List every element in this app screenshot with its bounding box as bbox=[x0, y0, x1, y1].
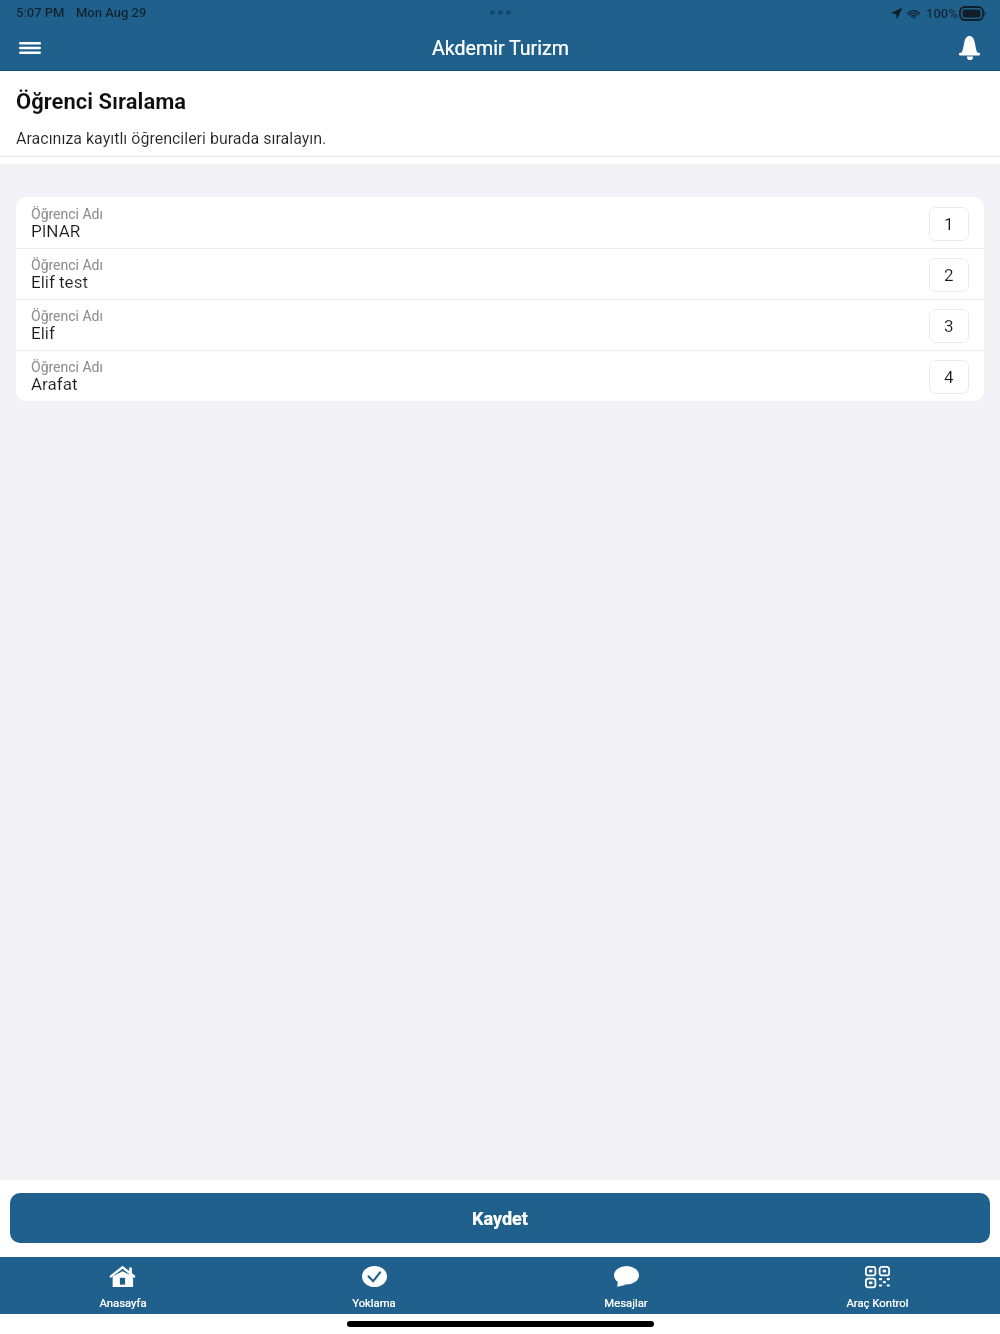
staticText: Öğrenci Adı bbox=[31, 206, 103, 222]
staticText: Elif bbox=[31, 323, 55, 343]
button[interactable]: Mesajlar bbox=[503, 1257, 749, 1314]
staticText: Öğrenci Adı bbox=[31, 308, 103, 324]
staticText: Mon Aug 29 bbox=[76, 5, 147, 20]
button[interactable]: Anasayfa bbox=[0, 1257, 245, 1314]
staticText: 1 bbox=[944, 214, 954, 234]
staticText: Kaydet bbox=[472, 1208, 528, 1229]
staticText: PINAR bbox=[31, 221, 81, 241]
staticText: Elif test bbox=[31, 272, 88, 292]
button[interactable]: Öğrenci Adı bbox=[16, 248, 984, 299]
staticText: Aracınıza kayıtlı öğrencileri burada sır… bbox=[16, 129, 327, 148]
button[interactable]: Yoklama bbox=[245, 1257, 503, 1314]
staticText: 4 bbox=[944, 367, 954, 387]
staticText: Anasayfa bbox=[99, 1297, 147, 1310]
staticText: Araç Kontrol bbox=[846, 1297, 909, 1310]
button[interactable]: Notifications bbox=[947, 26, 991, 70]
staticText: 100% bbox=[926, 6, 958, 21]
button[interactable]: Öğrenci Adı bbox=[16, 350, 984, 401]
staticText: 2 bbox=[944, 265, 954, 285]
staticText: 5:07 PM bbox=[16, 5, 65, 20]
button[interactable]: Araç Kontrol bbox=[749, 1257, 1000, 1314]
staticText: Arafat bbox=[31, 374, 78, 394]
staticText: Akdemir Turizm bbox=[432, 37, 569, 60]
staticText: 3 bbox=[944, 316, 954, 336]
staticText: Öğrenci Sıralama bbox=[16, 89, 187, 115]
button[interactable]: Kaydet bbox=[10, 1193, 990, 1243]
button[interactable]: Öğrenci Adı bbox=[16, 299, 984, 350]
button[interactable]: Open navigation menu bbox=[8, 26, 52, 70]
staticText: Öğrenci Adı bbox=[31, 359, 103, 375]
staticText: Yoklama bbox=[352, 1297, 396, 1310]
staticText: Mesajlar bbox=[604, 1297, 648, 1310]
button[interactable]: Öğrenci Adı bbox=[16, 197, 984, 248]
staticText: Öğrenci Adı bbox=[31, 257, 103, 273]
